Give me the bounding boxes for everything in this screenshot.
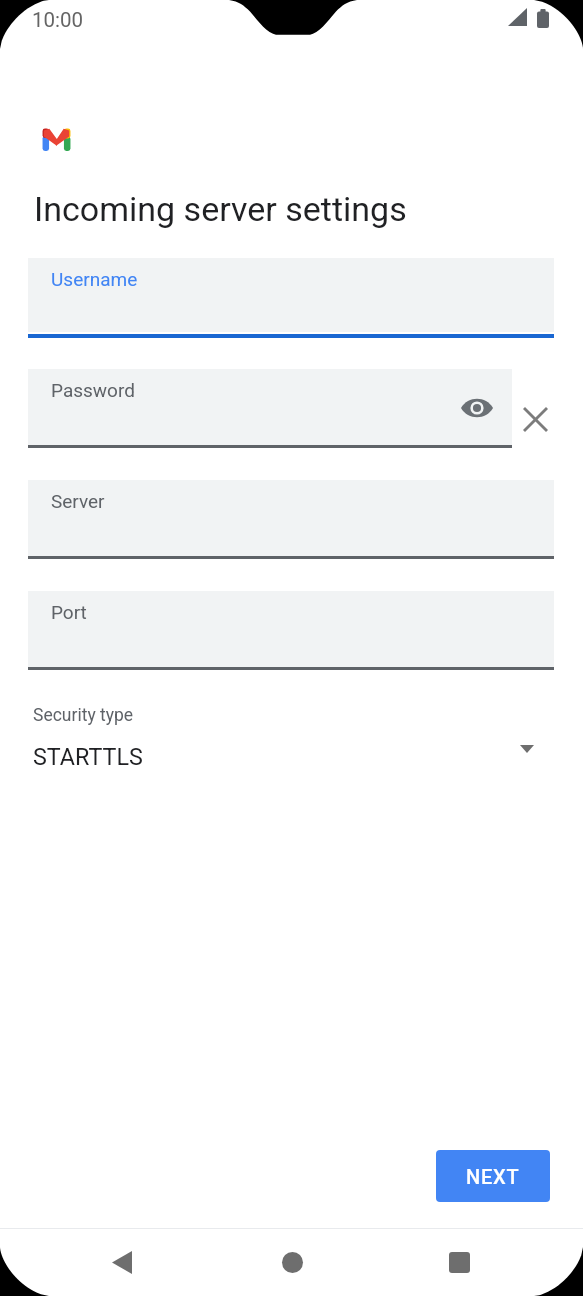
staticText: Incoming server settings bbox=[34, 189, 407, 229]
staticText: NEXT bbox=[466, 1165, 520, 1188]
button[interactable]: Port bbox=[28, 591, 554, 667]
staticText: Server bbox=[51, 490, 105, 512]
staticText: Security type bbox=[33, 705, 134, 726]
button[interactable]: Username bbox=[28, 258, 554, 332]
button[interactable]: Back bbox=[88, 1229, 156, 1296]
button[interactable]: NEXT bbox=[436, 1150, 550, 1202]
button[interactable]: Show password bbox=[457, 388, 497, 428]
button[interactable]: Clear password bbox=[512, 396, 558, 442]
staticText: 10:00 bbox=[32, 8, 84, 32]
button[interactable]: Server bbox=[28, 480, 554, 556]
button[interactable]: Recent apps bbox=[425, 1229, 493, 1296]
button[interactable]: Home bbox=[258, 1229, 326, 1296]
staticText: Port bbox=[51, 601, 87, 623]
button[interactable]: Security type bbox=[28, 698, 554, 770]
staticText: Password bbox=[51, 379, 135, 401]
staticText: Username bbox=[51, 268, 138, 290]
button[interactable]: Password bbox=[28, 369, 512, 445]
staticText: STARTTLS bbox=[33, 743, 143, 770]
